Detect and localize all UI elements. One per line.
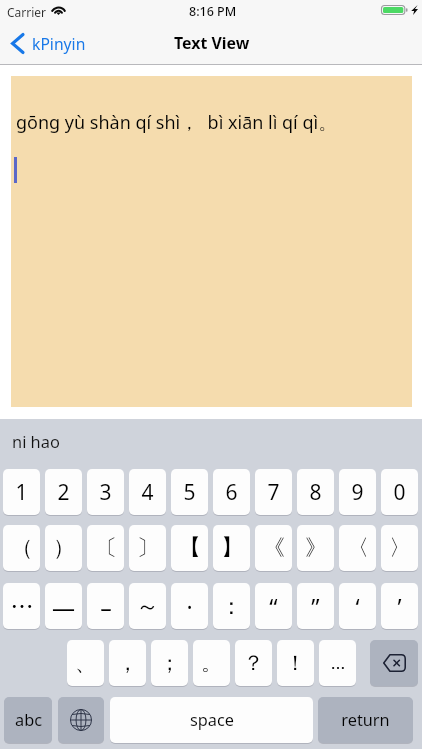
staticText: 〕 [137, 534, 159, 562]
staticText: ～ [136, 592, 159, 621]
button[interactable]: ， [109, 640, 146, 686]
staticText: Carrier [7, 4, 47, 20]
button[interactable]: Switch keyboard [58, 697, 104, 743]
staticText: ’ [397, 591, 402, 622]
button[interactable]: 、 [67, 640, 104, 686]
button[interactable]: ’ [381, 583, 418, 629]
button[interactable]: 8 [297, 469, 334, 515]
staticText: gōng yù shàn qí shì， bì xiān lì qí qì。 [16, 110, 337, 135]
button[interactable]: Delete [370, 640, 418, 686]
staticText: 】 [221, 534, 243, 562]
staticText: ！ [285, 650, 306, 676]
button[interactable]: 3 [87, 469, 124, 515]
button[interactable]: 5 [171, 469, 208, 515]
button[interactable]: 】 [213, 525, 250, 571]
staticText: space [190, 709, 234, 731]
button[interactable]: 2 [45, 469, 82, 515]
staticText: 1 [15, 478, 28, 507]
button[interactable]: 0 [381, 469, 418, 515]
staticText: ； [159, 650, 180, 676]
staticText: ？ [243, 650, 264, 676]
staticText: ‘ [355, 591, 360, 622]
staticText: 6 [225, 478, 238, 507]
staticText: 〈 [347, 534, 369, 562]
staticText: 》 [305, 534, 327, 562]
staticText: ni hao [12, 430, 60, 452]
staticText: 5 [183, 478, 196, 507]
staticText: abc [15, 709, 42, 731]
staticText: kPinyin [32, 33, 86, 54]
button[interactable] [319, 640, 356, 686]
staticText: （ [11, 534, 33, 562]
staticText: ， [117, 650, 138, 676]
button[interactable]: 4 [129, 469, 166, 515]
staticText: — [52, 591, 75, 622]
staticText: 0 [393, 478, 406, 507]
staticText: ： [220, 592, 243, 621]
button[interactable]: return [318, 697, 413, 743]
staticText: 〉 [389, 534, 411, 562]
button[interactable]: 〈 [339, 525, 376, 571]
staticText: 4 [141, 478, 154, 507]
button[interactable]: 〔 [87, 525, 124, 571]
staticText: ” [311, 591, 320, 622]
staticText: – [100, 591, 112, 622]
button[interactable]: · [171, 583, 208, 629]
button[interactable]: 》 [297, 525, 334, 571]
button[interactable]: ： [213, 583, 250, 629]
staticText: 《 [263, 534, 285, 562]
staticText: 8:16 PM [189, 3, 237, 20]
staticText: 8 [309, 478, 322, 507]
staticText: “ [269, 591, 278, 622]
button[interactable]: （ [3, 525, 40, 571]
button[interactable]: 6 [213, 469, 250, 515]
button[interactable]: 7 [255, 469, 292, 515]
button[interactable]: abc [4, 697, 52, 743]
button[interactable]: “ [255, 583, 292, 629]
button[interactable]: space [110, 697, 313, 743]
staticText: 〔 [95, 534, 117, 562]
staticText: Text View [174, 32, 250, 54]
button[interactable]: 9 [339, 469, 376, 515]
button[interactable]: ； [151, 640, 188, 686]
button[interactable]: ‘ [339, 583, 376, 629]
staticText: return [341, 709, 390, 731]
button[interactable]: ！ [277, 640, 314, 686]
button[interactable]: ” [297, 583, 334, 629]
button[interactable]: 【 [171, 525, 208, 571]
button[interactable] [3, 583, 40, 629]
button[interactable]: 《 [255, 525, 292, 571]
staticText: 、 [75, 650, 96, 676]
staticText: 2 [57, 478, 70, 507]
button[interactable]: 〕 [129, 525, 166, 571]
button[interactable]: 〉 [381, 525, 418, 571]
staticText: · [186, 591, 193, 622]
button[interactable]: 1 [3, 469, 40, 515]
staticText: ） [53, 534, 75, 562]
button[interactable]: — [45, 583, 82, 629]
staticText: 3 [99, 478, 112, 507]
button[interactable]: ） [45, 525, 82, 571]
button[interactable]: ～ [129, 583, 166, 629]
button[interactable]: – [87, 583, 124, 629]
staticText: 。 [201, 650, 222, 676]
button[interactable]: ？ [235, 640, 272, 686]
button[interactable]: kPinyin [10, 29, 86, 57]
staticText: 7 [267, 478, 280, 507]
staticText: 9 [351, 478, 364, 507]
staticText: 【 [179, 534, 201, 562]
button[interactable]: 。 [193, 640, 230, 686]
